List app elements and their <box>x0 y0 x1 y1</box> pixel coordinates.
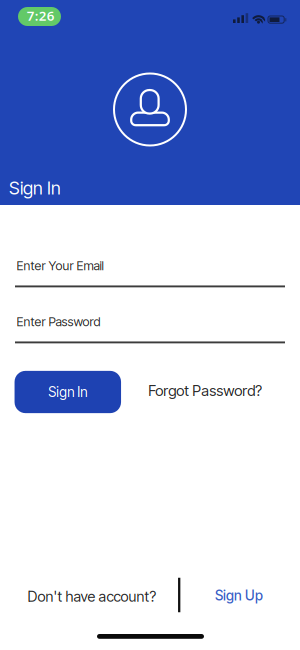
button[interactable]: Sign In <box>14 371 121 413</box>
staticText: Enter Password <box>16 314 100 329</box>
button[interactable]: Forgot Password? <box>148 382 262 399</box>
staticText: Forgot Password? <box>148 382 262 399</box>
button[interactable]: Sign Up <box>215 587 263 604</box>
staticText: Sign In <box>48 384 87 400</box>
staticText: Enter Your Email <box>16 258 103 273</box>
staticText: Sign In <box>9 177 61 199</box>
textField[interactable]: Enter Password <box>16 314 154 329</box>
textField[interactable]: Enter Your Email <box>16 258 154 273</box>
staticText: Don't have account? <box>27 588 156 605</box>
staticText: 7:26 <box>27 7 55 24</box>
staticText: Sign Up <box>215 587 263 604</box>
